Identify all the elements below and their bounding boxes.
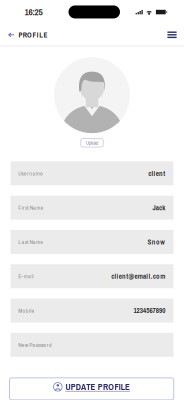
staticText: Snow (148, 237, 165, 247)
staticText: Username (18, 169, 43, 177)
staticText: 1234567890 (133, 306, 165, 315)
staticText: E-mail (18, 272, 33, 280)
staticText: UPDATE PROFILE (65, 381, 130, 393)
staticText: Jack (153, 203, 165, 212)
staticText: New Password (18, 341, 52, 349)
staticText: Last Name (18, 238, 43, 246)
staticText: PROFILE (18, 30, 47, 40)
staticText: 16:25 (25, 6, 43, 18)
staticText: Mobile (18, 307, 34, 314)
button[interactable]: UPDATE PROFILE (9, 378, 174, 400)
staticText: client@email.com (111, 271, 165, 281)
staticText: First Name (18, 204, 43, 212)
staticText: client (148, 169, 165, 178)
staticText: Upload (86, 139, 98, 146)
button[interactable]: Back (4, 27, 18, 42)
button[interactable]: Menu (164, 27, 179, 42)
button[interactable]: Upload (81, 139, 103, 147)
